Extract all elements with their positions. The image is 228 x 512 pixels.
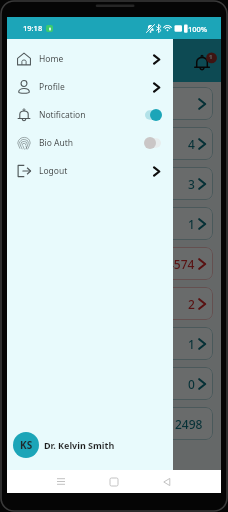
button[interactable]: Recent apps xyxy=(46,470,76,493)
staticText: Dr. Kelvin Smith xyxy=(44,439,115,451)
button[interactable]: Home xyxy=(99,470,129,493)
staticText: KS xyxy=(20,438,33,452)
button[interactable]: Notifications xyxy=(189,47,217,75)
staticText: Total Patients xyxy=(24,97,89,111)
staticText: 2 xyxy=(188,296,195,312)
staticText: 4574 xyxy=(167,256,195,272)
button[interactable]: Total Patients xyxy=(15,87,213,120)
button[interactable]: New Results xyxy=(15,167,213,200)
staticText: 1 xyxy=(188,216,195,232)
staticText: 4 xyxy=(188,136,195,152)
button[interactable]: KS xyxy=(7,420,173,470)
button[interactable]: Back xyxy=(152,470,182,493)
button[interactable]: Logout xyxy=(7,157,173,185)
staticText: Notification xyxy=(39,109,86,121)
button[interactable]: Appointments xyxy=(15,127,213,160)
button[interactable]: Bio Auth xyxy=(7,129,173,157)
button[interactable]: Due Invoices xyxy=(15,287,213,320)
staticText: 1 xyxy=(209,53,213,61)
button[interactable]: Prescriptions xyxy=(15,327,213,360)
button[interactable]: Profile xyxy=(7,73,173,101)
button[interactable]: Pending Amount xyxy=(15,247,213,280)
staticText: 3 xyxy=(188,176,195,192)
staticText: 1 xyxy=(188,336,195,352)
staticText: Logout xyxy=(39,165,68,177)
button[interactable]: Notification xyxy=(7,101,173,129)
staticText: 100% xyxy=(188,24,208,34)
staticText: Appointments xyxy=(24,137,93,151)
staticText: Home xyxy=(39,53,64,65)
button[interactable]: Total Earnings xyxy=(15,407,213,440)
button[interactable]: Messages xyxy=(15,207,213,240)
staticText: Profile xyxy=(39,81,65,93)
staticText: 2498 xyxy=(175,416,203,432)
staticText: 19:18 xyxy=(23,23,43,33)
button[interactable]: Cancelled xyxy=(15,367,213,400)
button[interactable]: Home xyxy=(7,45,173,73)
staticText: Bio Auth xyxy=(39,137,74,149)
staticText: 0 xyxy=(188,376,195,392)
